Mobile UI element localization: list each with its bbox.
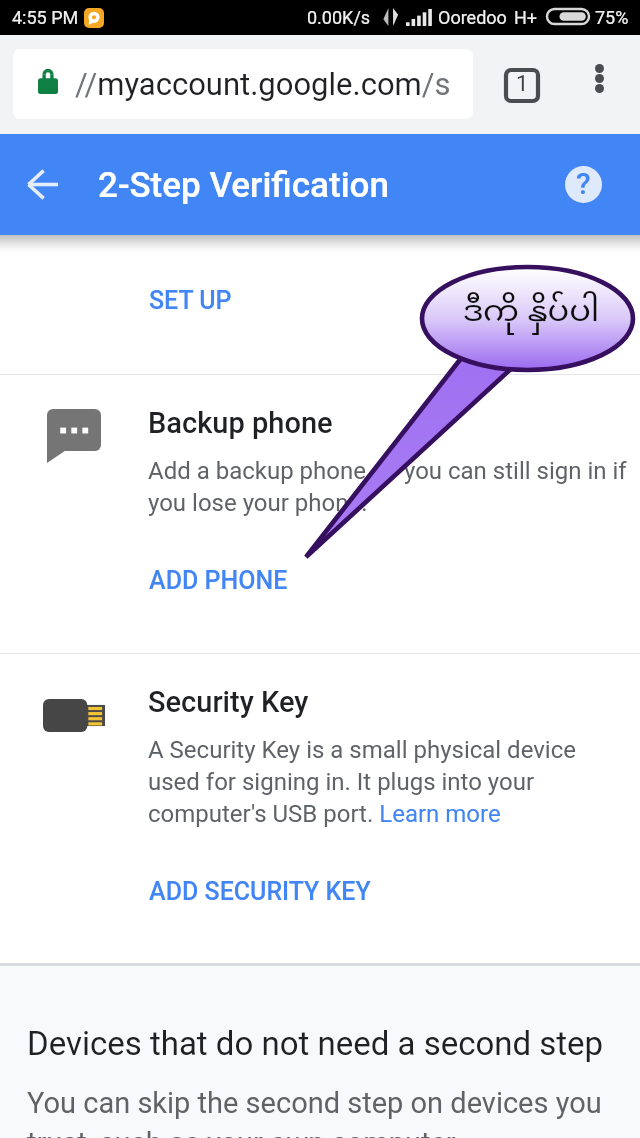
staticText: ADD PHONE	[149, 566, 288, 595]
button[interactable]: ADD SECURITY KEY	[130, 863, 390, 919]
button[interactable]: Help	[560, 161, 606, 207]
staticText: 4:55 PM	[12, 7, 79, 28]
staticText: Security Key	[148, 685, 309, 719]
staticText: Ooredoo	[438, 7, 507, 28]
button[interactable]: //myaccount.google.com/s	[13, 49, 473, 119]
staticText: 75%	[595, 7, 629, 28]
staticText: 2-Step Verification	[98, 165, 390, 206]
button[interactable]: ADD PHONE	[130, 552, 320, 608]
button[interactable]: Back	[20, 161, 66, 207]
staticText: A Security Key is a small physical devic…	[148, 736, 629, 828]
button[interactable]: SET UP	[130, 272, 270, 328]
staticText: H+	[514, 7, 538, 28]
staticText: SET UP	[149, 286, 232, 315]
staticText: Devices that do not need a second step	[27, 1024, 604, 1063]
staticText: You can skip the second step on devices …	[27, 1086, 627, 1138]
staticText: 0.00K/s	[307, 7, 371, 28]
staticText: //myaccount.google.com/s	[75, 66, 451, 102]
staticText: ဒီကို နှိပ်ပါ	[431, 292, 631, 336]
button[interactable]: More options	[578, 57, 620, 99]
staticText: ?	[576, 166, 591, 201]
staticText: 1	[516, 71, 529, 97]
button[interactable]: Tabs	[502, 65, 542, 105]
staticText: Add a backup phone so you can still sign…	[148, 457, 629, 517]
staticText: ADD SECURITY KEY	[149, 877, 371, 906]
staticText: Backup phone	[148, 406, 333, 440]
